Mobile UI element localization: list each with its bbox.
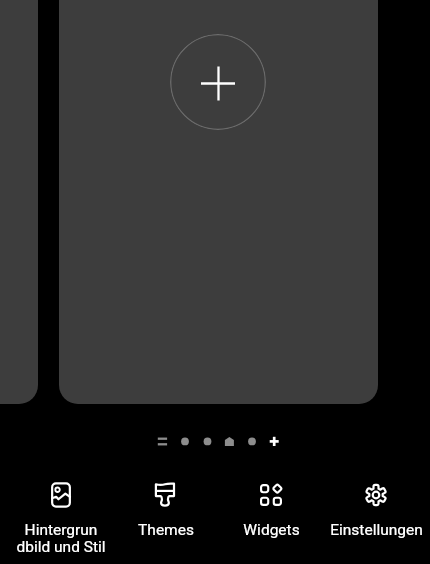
button[interactable]: [0, 0, 38, 404]
button[interactable]: Widgets: [219, 470, 323, 564]
staticText: Widgets: [243, 521, 300, 539]
button[interactable]: Page indicator: [155, 432, 277, 451]
button[interactable]: Settings: [324, 470, 428, 564]
staticText: Themes: [138, 521, 194, 539]
other: Widgets: [257, 481, 285, 509]
other: Themes: [152, 481, 180, 509]
button[interactable]: Add home screen page: [59, 0, 378, 404]
button[interactable]: Wallpaper and style: [9, 470, 113, 564]
other: Settings: [362, 481, 390, 509]
staticText: Hintergrun dbild und Stil: [16, 521, 106, 556]
staticText: Einstellungen: [330, 521, 423, 539]
other: Wallpaper and style: [47, 481, 75, 509]
button[interactable]: Themes: [114, 470, 218, 564]
